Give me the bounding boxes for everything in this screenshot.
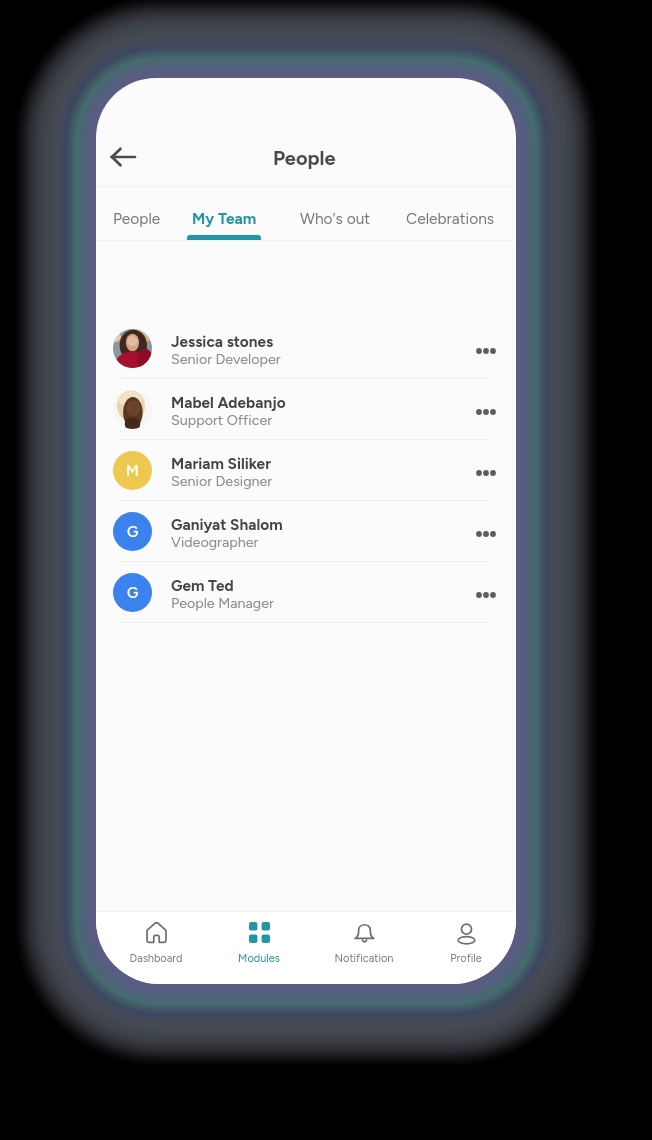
- staticText: Senior Designer: [171, 472, 273, 489]
- button[interactable]: Profile: [415, 912, 516, 984]
- button[interactable]: Dashboard: [105, 912, 207, 984]
- button[interactable]: Modules: [208, 912, 310, 984]
- staticText: Mariam Siliker: [171, 454, 271, 472]
- staticText: Who's out: [300, 209, 371, 228]
- staticText: Dashboard: [129, 952, 183, 965]
- button[interactable]: Back: [99, 133, 147, 181]
- staticText: Notification: [334, 952, 394, 965]
- button[interactable]: More options for Mabel Adebanjo: [469, 395, 503, 429]
- staticText: Gem Ted: [171, 576, 234, 594]
- staticText: Profile: [450, 952, 482, 965]
- button[interactable]: Celebrations: [401, 209, 500, 241]
- button[interactable]: G: [96, 562, 516, 623]
- staticText: People: [273, 146, 336, 170]
- staticText: G: [127, 523, 139, 541]
- staticText: Senior Developer: [171, 350, 281, 367]
- button[interactable]: More options for Ganiyat Shalom: [469, 517, 503, 551]
- button[interactable]: Who's out: [293, 209, 377, 241]
- staticText: M: [126, 462, 139, 480]
- button[interactable]: More options for Gem Ted: [469, 578, 503, 612]
- button[interactable]: Jessica stones: [96, 318, 516, 379]
- button[interactable]: My Team: [187, 209, 261, 241]
- staticText: G: [127, 584, 139, 602]
- button[interactable]: People: [108, 209, 166, 241]
- button[interactable]: M: [96, 440, 516, 501]
- button[interactable]: G: [96, 501, 516, 562]
- staticText: Support Officer: [171, 411, 273, 428]
- staticText: Celebrations: [406, 209, 495, 228]
- button[interactable]: Mabel Adebanjo: [96, 379, 516, 440]
- staticText: Jessica stones: [171, 332, 274, 350]
- button[interactable]: Notification: [313, 912, 415, 984]
- button[interactable]: More options for Mariam Siliker: [469, 456, 503, 490]
- staticText: Ganiyat Shalom: [171, 515, 283, 533]
- staticText: Videographer: [171, 533, 259, 550]
- staticText: People Manager: [171, 594, 274, 611]
- staticText: Mabel Adebanjo: [171, 393, 286, 411]
- button[interactable]: More options for Jessica stones: [469, 334, 503, 368]
- staticText: Modules: [238, 952, 280, 965]
- staticText: My Team: [192, 209, 257, 228]
- staticText: People: [113, 209, 161, 228]
